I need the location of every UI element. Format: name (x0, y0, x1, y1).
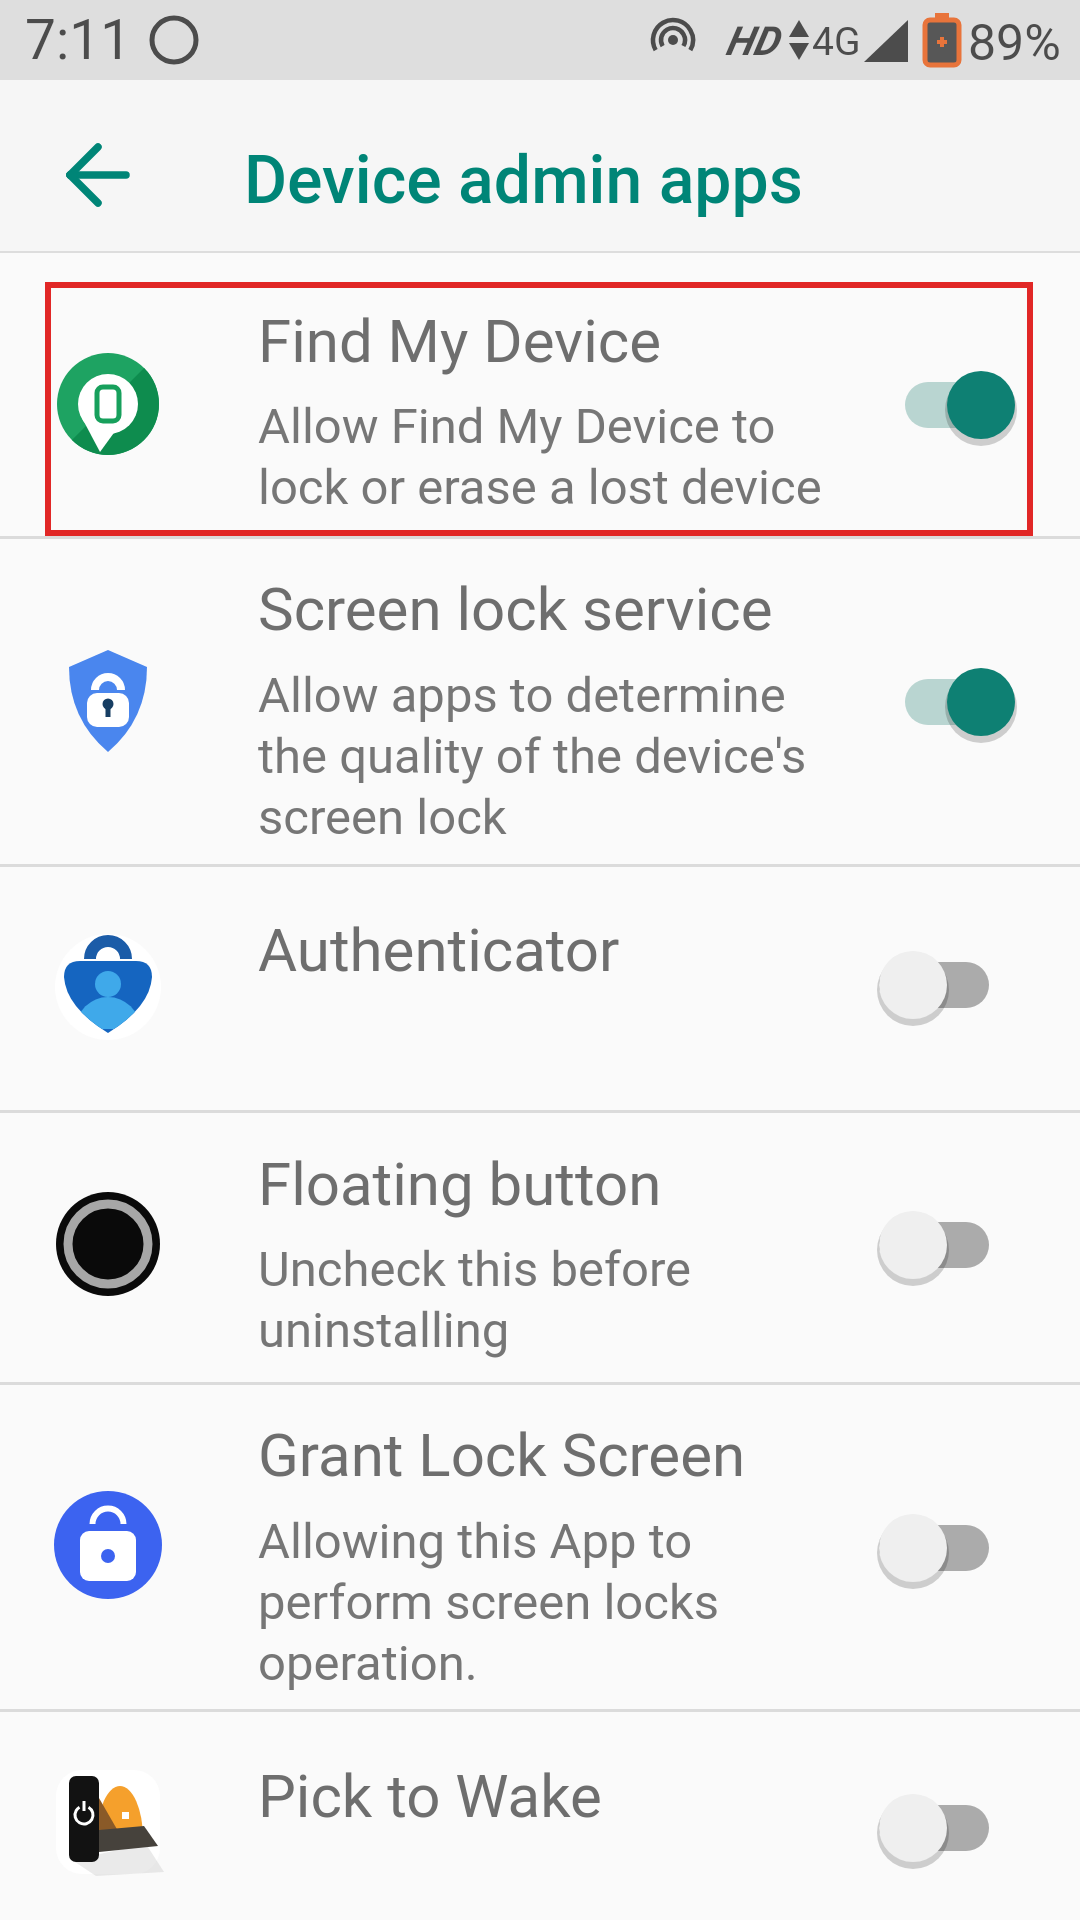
staticText: Floating button (258, 1149, 662, 1219)
button[interactable] (859, 1773, 1009, 1883)
button[interactable] (859, 930, 1009, 1040)
staticText: Grant Lock Screen (258, 1420, 746, 1490)
button[interactable] (885, 350, 1035, 460)
button[interactable] (885, 647, 1035, 757)
button[interactable] (859, 1493, 1009, 1603)
staticText: 7:11 (25, 8, 132, 72)
staticText: Uncheck this before uninstalling (258, 1241, 692, 1359)
staticText: Device admin apps (244, 142, 803, 219)
button[interactable]: Find My Device (0, 253, 1080, 539)
button[interactable] (42, 119, 154, 231)
staticText: Allowing this App to perform screen lock… (258, 1513, 720, 1692)
button[interactable]: Floating button (0, 1113, 1080, 1385)
staticText: Allow Find My Device to lock or erase a … (258, 398, 822, 516)
staticText: 4G (812, 19, 861, 65)
staticText: Pick to Wake (258, 1761, 602, 1831)
button[interactable]: Authenticator (0, 867, 1080, 1113)
staticText: Screen lock service (258, 574, 773, 644)
button[interactable]: Grant Lock Screen (0, 1385, 1080, 1712)
staticText: Authenticator (258, 915, 620, 985)
button[interactable] (859, 1190, 1009, 1300)
staticText: 89% (968, 14, 1061, 73)
staticText: Find My Device (258, 306, 661, 376)
staticText: HD (725, 18, 778, 65)
button[interactable]: Screen lock service (0, 539, 1080, 867)
button[interactable]: Pick to Wake (0, 1712, 1080, 1920)
staticText: Allow apps to determine the quality of t… (258, 667, 807, 846)
